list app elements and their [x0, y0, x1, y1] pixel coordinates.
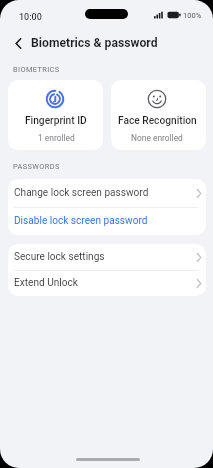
- staticText: PASSWORDS: [13, 162, 60, 171]
- staticText: Biometrics & password: [31, 36, 158, 50]
- staticText: Face Recognition: [118, 115, 197, 127]
- staticText: Disable lock screen password: [14, 215, 148, 227]
- staticText: Extend Unlock: [14, 277, 78, 289]
- staticText: 100%: [183, 11, 202, 20]
- staticText: 1 enrolled: [38, 133, 75, 143]
- staticText: Secure lock settings: [14, 251, 105, 263]
- staticText: Fingerprint ID: [25, 115, 87, 127]
- staticText: 10:00: [19, 12, 42, 23]
- staticText: None enrolled: [131, 133, 183, 143]
- staticText: BIOMETRICS: [13, 65, 60, 74]
- staticText: Change lock screen password: [14, 187, 149, 199]
